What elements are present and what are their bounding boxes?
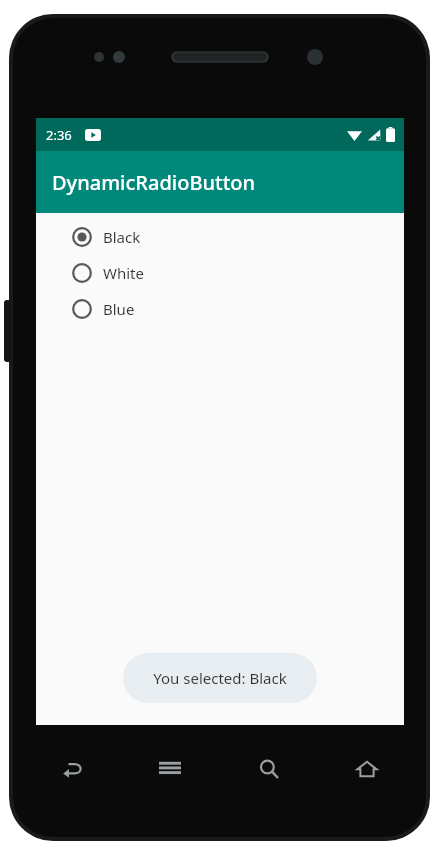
- staticText: White: [103, 263, 144, 283]
- staticText: Black: [103, 227, 141, 247]
- staticText: Blue: [103, 299, 135, 319]
- staticText: You selected: Black: [153, 668, 287, 688]
- button[interactable]: Back: [50, 748, 94, 790]
- button[interactable]: Menu: [148, 748, 192, 790]
- staticText: DynamicRadioButton: [52, 169, 256, 196]
- button[interactable]: You selected: Black: [123, 653, 317, 703]
- button[interactable]: Black: [72, 219, 404, 255]
- button[interactable]: Search: [247, 748, 291, 790]
- button[interactable]: White: [72, 255, 404, 291]
- button[interactable]: Blue: [72, 291, 404, 327]
- staticText: 2:36: [46, 126, 72, 144]
- button[interactable]: Home: [345, 748, 389, 790]
